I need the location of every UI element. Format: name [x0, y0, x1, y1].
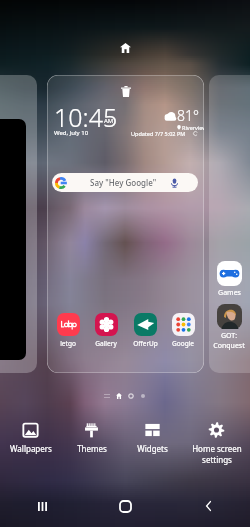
button[interactable]: Recents [0, 485, 84, 527]
button[interactable]: Google [166, 313, 200, 348]
button[interactable] [209, 75, 250, 373]
staticText: OfferUp [133, 339, 158, 348]
button[interactable]: Games [217, 261, 242, 298]
staticText: letgo [60, 339, 76, 348]
button[interactable]: Page 1 [101, 390, 113, 402]
button[interactable] [0, 75, 37, 373]
button[interactable]: Say "Hey Google" [52, 173, 198, 192]
button[interactable]: Page 3 [125, 390, 137, 402]
button[interactable]: Themes [61, 416, 122, 454]
staticText: Widgets [137, 443, 168, 454]
staticText: Wallpapers [10, 443, 52, 454]
staticText: Games [218, 288, 241, 298]
staticText: Google [172, 339, 194, 348]
button[interactable]: OfferUp [128, 313, 162, 348]
button[interactable]: Home [84, 485, 167, 527]
button[interactable]: GOT: Conquest [213, 304, 245, 351]
button[interactable]: letgo [51, 313, 85, 348]
button[interactable]: Back [167, 485, 250, 527]
button[interactable]: Widgets [122, 416, 183, 454]
staticText: Wed, July 10 [54, 129, 89, 137]
staticText: GOT: Conquest [213, 331, 245, 351]
staticText: Riverview [182, 124, 204, 131]
staticText: Updated 7/7 5:02 PM [131, 130, 186, 137]
button[interactable]: Home page [118, 40, 133, 55]
staticText: Home screen settings [192, 443, 242, 465]
button[interactable]: Home page [113, 390, 125, 402]
staticText: AM [104, 117, 114, 125]
staticText: 10:45 [54, 100, 118, 134]
button[interactable]: Remove page [118, 83, 134, 99]
button[interactable]: Gallery [89, 313, 123, 348]
button[interactable]: 10:45 [47, 101, 204, 151]
staticText: 81° [177, 106, 199, 125]
button[interactable]: Home screen settings [183, 416, 250, 465]
staticText: Gallery [95, 339, 117, 348]
button[interactable]: Add page [137, 390, 149, 402]
staticText: Say "Hey Google" [90, 177, 157, 188]
staticText: Themes [77, 443, 107, 454]
button[interactable]: Wallpapers [0, 416, 61, 454]
